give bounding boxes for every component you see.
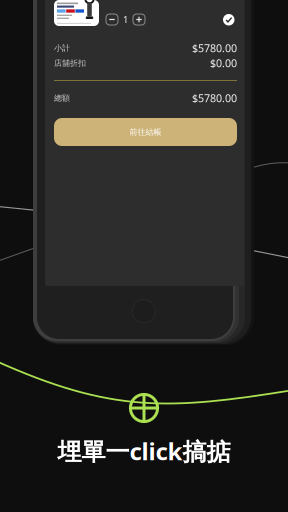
- staticText: 1: [123, 13, 128, 26]
- staticText: $5780.00: [192, 41, 237, 55]
- button[interactable]: Decrease quantity: [106, 14, 118, 25]
- staticText: $0.00: [210, 56, 237, 70]
- button[interactable]: 前往結帳: [54, 118, 237, 146]
- staticText: 總額: [54, 93, 70, 103]
- staticText: 埋單一click搞掂: [57, 435, 230, 467]
- staticText: 小計: [54, 43, 70, 53]
- button[interactable]: Increase quantity: [133, 14, 145, 25]
- staticText: $5780.00: [192, 91, 237, 105]
- button[interactable]: Item selected: [223, 14, 234, 25]
- staticText: 店舖折扣: [54, 58, 86, 68]
- staticText: 前往結帳: [129, 127, 161, 137]
